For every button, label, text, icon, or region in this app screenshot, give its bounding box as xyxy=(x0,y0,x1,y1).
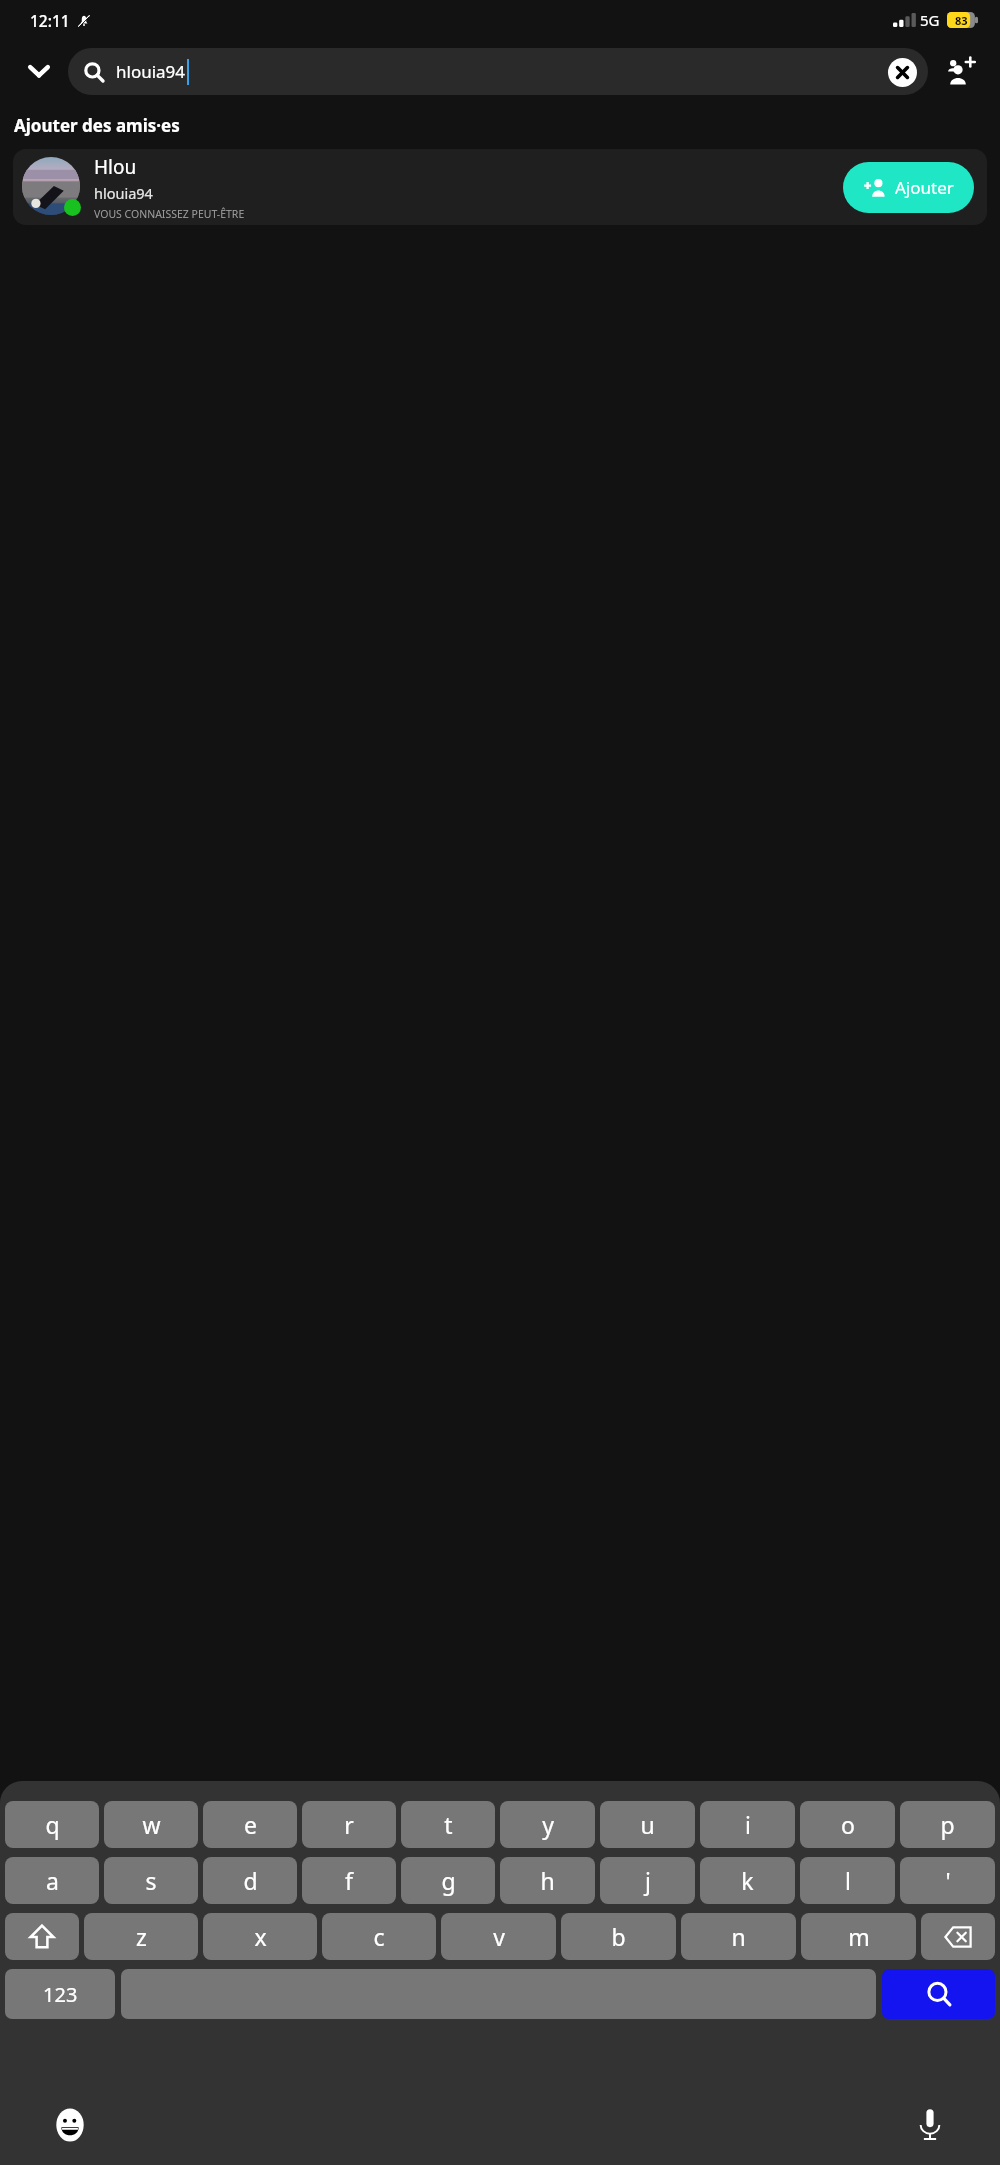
staticText: b xyxy=(611,1921,626,1952)
button[interactable]: Emoji xyxy=(44,2099,96,2151)
staticText: p xyxy=(940,1809,955,1840)
staticText: a xyxy=(46,1865,59,1896)
button[interactable]: z xyxy=(84,1913,198,1960)
button[interactable]: r xyxy=(302,1801,396,1848)
staticText: Hlou xyxy=(94,154,137,180)
button[interactable]: 123 xyxy=(5,1969,115,2019)
staticText: d xyxy=(243,1865,258,1896)
staticText: ' xyxy=(945,1865,951,1896)
button[interactable]: k xyxy=(700,1857,795,1904)
staticText: o xyxy=(841,1809,855,1840)
button[interactable]: y xyxy=(500,1801,595,1848)
button[interactable]: d xyxy=(203,1857,297,1904)
button[interactable]: b xyxy=(561,1913,676,1960)
staticText: r xyxy=(344,1809,354,1840)
staticText: 123 xyxy=(43,1981,78,2008)
staticText: VOUS CONNAISSEZ PEUT-ÊTRE xyxy=(94,207,245,221)
button[interactable]: v xyxy=(441,1913,556,1960)
button[interactable]: e xyxy=(203,1801,297,1848)
staticText: m xyxy=(848,1921,870,1952)
button[interactable]: c xyxy=(322,1913,436,1960)
button[interactable]: Fermer xyxy=(16,48,62,94)
staticText: z xyxy=(136,1921,147,1952)
button[interactable]: h xyxy=(500,1857,595,1904)
button[interactable]: Supprimer xyxy=(921,1913,995,1960)
button[interactable]: Ajouter des amis xyxy=(936,46,986,96)
button[interactable]: g xyxy=(401,1857,495,1904)
staticText: g xyxy=(441,1865,456,1896)
staticText: e xyxy=(244,1809,257,1840)
staticText: q xyxy=(45,1809,60,1840)
button[interactable]: s xyxy=(104,1857,198,1904)
button[interactable]: m xyxy=(801,1913,916,1960)
button[interactable]: Effacer xyxy=(882,52,922,92)
button[interactable]: Rechercher xyxy=(882,1969,995,2019)
staticText: u xyxy=(640,1809,655,1840)
button[interactable]: o xyxy=(800,1801,895,1848)
staticText: 83 xyxy=(955,13,968,28)
button[interactable]: ' xyxy=(900,1857,995,1904)
button[interactable]: i xyxy=(700,1801,795,1848)
staticText: f xyxy=(345,1865,353,1896)
button[interactable]: u xyxy=(600,1801,695,1848)
staticText: j xyxy=(645,1865,651,1896)
button[interactable]: l xyxy=(800,1857,895,1904)
staticText: l xyxy=(845,1865,851,1896)
button[interactable]: a xyxy=(5,1857,99,1904)
staticText: x xyxy=(254,1921,267,1952)
staticText: n xyxy=(731,1921,746,1952)
staticText: c xyxy=(373,1921,385,1952)
staticText: w xyxy=(142,1809,161,1840)
staticText: v xyxy=(493,1921,505,1952)
staticText: 12:11 xyxy=(30,10,70,31)
staticText: s xyxy=(145,1865,157,1896)
button[interactable]: hlouia94 xyxy=(68,48,928,95)
staticText: hlouia94 xyxy=(94,183,153,203)
button[interactable]: t xyxy=(401,1801,495,1848)
button[interactable]: p xyxy=(900,1801,995,1848)
button[interactable]: f xyxy=(302,1857,396,1904)
staticText: Ajouter xyxy=(895,176,954,199)
staticText: i xyxy=(745,1809,751,1840)
button[interactable]: n xyxy=(681,1913,796,1960)
staticText: y xyxy=(542,1809,554,1840)
button[interactable]: w xyxy=(104,1801,198,1848)
button[interactable]: Saisie vocale xyxy=(904,2099,956,2151)
staticText: k xyxy=(741,1865,754,1896)
staticText: 5G xyxy=(920,10,940,30)
button[interactable]: x xyxy=(203,1913,317,1960)
staticText: Ajouter des amis·es xyxy=(14,114,180,137)
button[interactable]: Ajouter xyxy=(843,162,974,213)
button[interactable]: Majuscule xyxy=(5,1913,79,1960)
staticText: h xyxy=(540,1865,555,1896)
staticText: hlouia94 xyxy=(116,60,186,83)
staticText: t xyxy=(444,1809,453,1840)
button[interactable]: Hlou xyxy=(13,149,987,225)
button[interactable]: q xyxy=(5,1801,99,1848)
button[interactable]: j xyxy=(600,1857,695,1904)
